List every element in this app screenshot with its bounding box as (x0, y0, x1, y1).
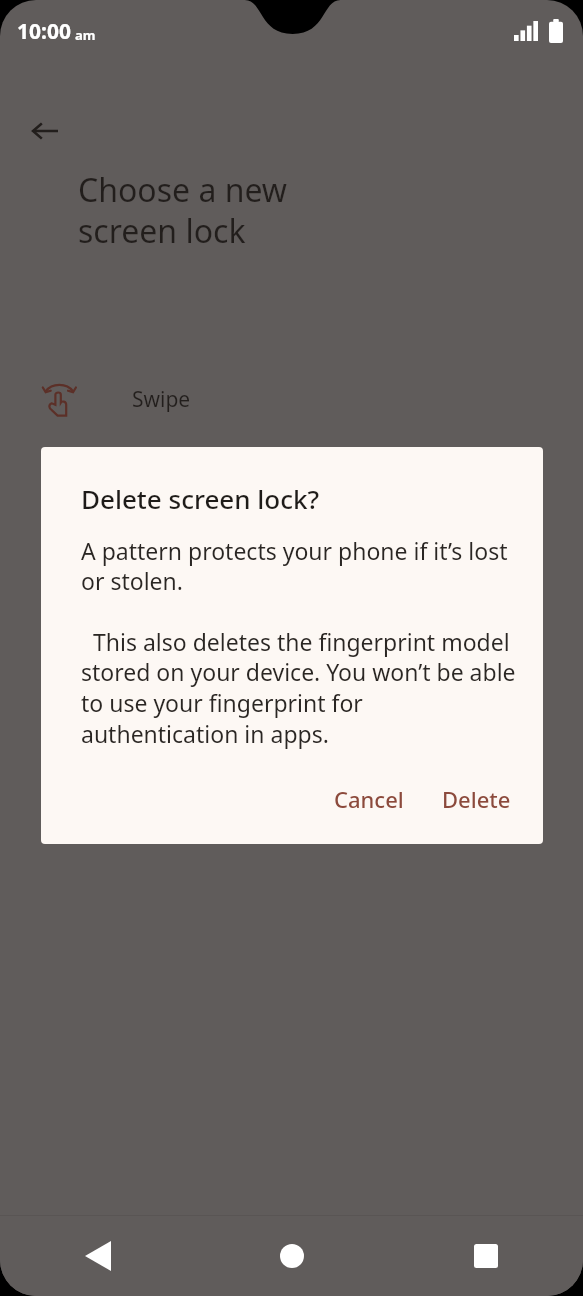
staticText: am (75, 26, 96, 44)
staticText: Cancel (334, 784, 404, 814)
button[interactable]: Home (195, 1216, 389, 1296)
button[interactable]: Swipe (0, 371, 583, 427)
staticText: Delete screen lock? (81, 481, 320, 516)
staticText: 10:00 (17, 17, 71, 46)
button[interactable]: Back (0, 1216, 195, 1296)
staticText: A pattern protects your phone if it’s lo… (81, 535, 521, 597)
staticText: Swipe (132, 385, 191, 414)
button[interactable]: Recents (389, 1216, 583, 1296)
staticText: This also deletes the fingerprint model … (81, 626, 525, 750)
staticText: Delete (442, 784, 511, 814)
button[interactable]: Back (22, 108, 68, 154)
button[interactable]: Cancel (320, 774, 418, 824)
staticText: Choose a new screen lock (78, 168, 288, 253)
button[interactable]: Delete (428, 774, 525, 824)
